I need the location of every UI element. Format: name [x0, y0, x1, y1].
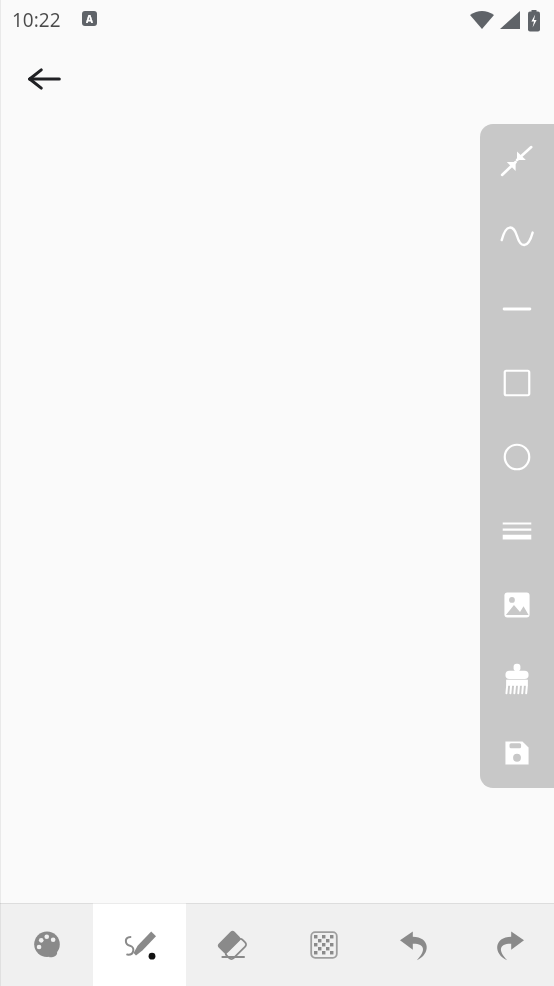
button[interactable]: Layers — [480, 494, 554, 568]
button[interactable]: Pattern — [278, 903, 370, 986]
staticText: 10:22 — [12, 7, 61, 33]
button[interactable]: Undo — [370, 903, 462, 986]
button[interactable]: Line — [480, 272, 554, 346]
button[interactable]: Circle — [480, 420, 554, 494]
button[interactable]: Curve — [480, 199, 554, 273]
button[interactable]: Collapse — [480, 124, 554, 197]
button[interactable]: Back — [14, 49, 74, 109]
button[interactable]: Insert image — [480, 568, 554, 642]
button[interactable]: Eraser — [186, 903, 278, 986]
button[interactable]: Redo — [462, 903, 554, 986]
button[interactable]: Color palette — [0, 903, 93, 986]
button[interactable]: Clear canvas — [480, 642, 554, 716]
button[interactable]: Brush — [93, 903, 186, 986]
button[interactable]: Save — [480, 716, 554, 788]
staticText: A — [86, 12, 93, 26]
button[interactable]: Rectangle — [480, 346, 554, 420]
